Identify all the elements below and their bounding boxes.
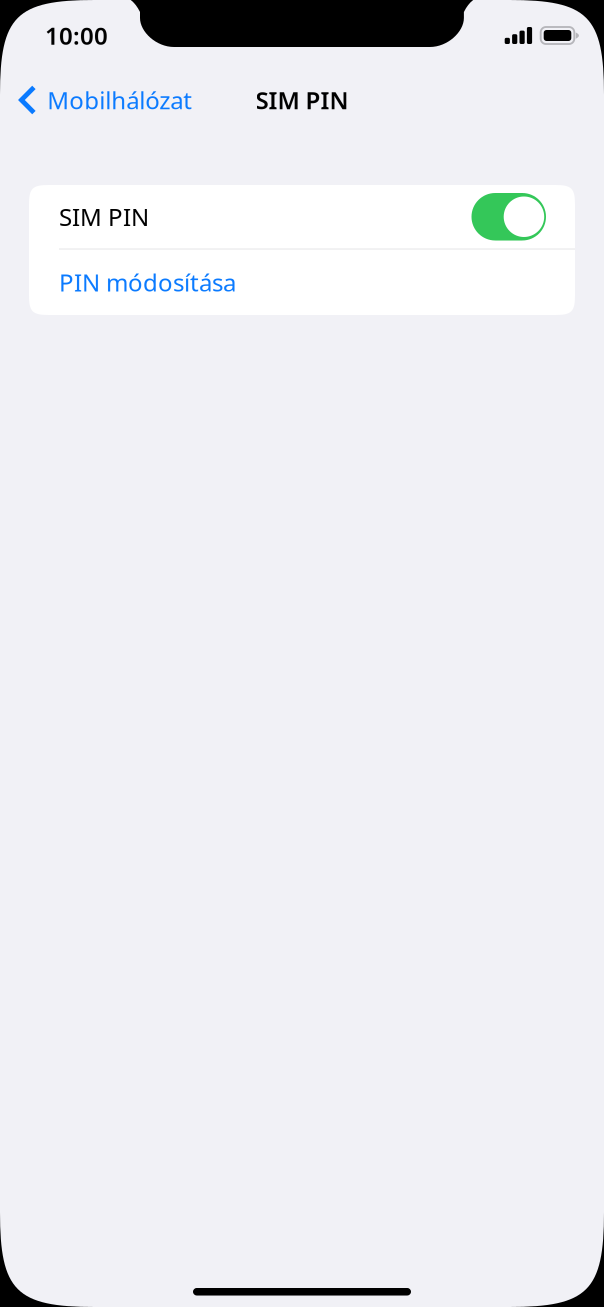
staticText: Mobilhálózat [47,84,192,116]
staticText: SIM PIN [255,84,348,116]
staticText: 10:00 [45,20,108,51]
button[interactable]: Mobilhálózat [0,71,208,129]
staticText: SIM PIN [59,201,149,233]
button[interactable]: PIN módosítása [29,249,575,315]
button[interactable]: SIM PIN [29,185,575,248]
staticText: PIN módosítása [59,266,236,298]
